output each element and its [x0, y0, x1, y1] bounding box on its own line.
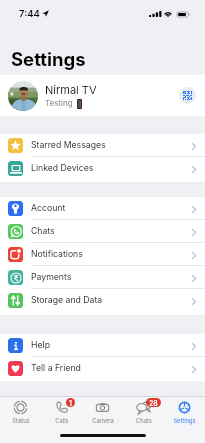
staticText: Calls: [55, 417, 69, 424]
staticText: Chats: [31, 226, 55, 237]
staticText: Account: [31, 203, 66, 214]
button[interactable]: Notifications: [0, 243, 205, 266]
staticText: Starred Messages: [31, 140, 106, 151]
staticText: Linked Devices: [31, 163, 94, 174]
staticText: 1: [69, 399, 72, 407]
staticText: Camera: [92, 417, 114, 424]
staticText: Tell a Friend: [31, 363, 81, 374]
staticText: 7:44: [19, 8, 40, 19]
staticText: Notifications: [31, 249, 83, 260]
staticText: Chats: [136, 417, 152, 424]
button[interactable]: Account: [0, 197, 205, 220]
staticText: Settings: [11, 48, 86, 70]
staticText: Help: [31, 340, 50, 351]
staticText: Nirmal TV: [45, 83, 97, 96]
button[interactable]: Help: [0, 334, 205, 357]
staticText: Settings: [173, 417, 196, 424]
button[interactable]: Linked Devices: [0, 157, 205, 180]
button[interactable]: Tell a Friend: [0, 357, 205, 380]
staticText: Payments: [31, 272, 72, 283]
button[interactable]: Starred Messages: [0, 134, 205, 157]
button[interactable]: Settings: [164, 397, 205, 410]
staticText: Testing: [45, 98, 73, 108]
staticText: Status: [12, 417, 30, 424]
button[interactable]: Show QR code: [179, 87, 196, 104]
button[interactable]: Status: [0, 397, 41, 410]
staticText: 28: [149, 399, 158, 407]
button[interactable]: Storage and Data: [0, 289, 205, 312]
staticText: Storage and Data: [31, 295, 103, 306]
button[interactable]: 28: [123, 397, 164, 411]
button[interactable]: Camera: [82, 397, 123, 410]
button[interactable]: Nirmal TV: [0, 75, 205, 116]
button[interactable]: Payments: [0, 266, 205, 289]
button[interactable]: Chats: [0, 220, 205, 243]
button[interactable]: 1: [41, 397, 82, 409]
